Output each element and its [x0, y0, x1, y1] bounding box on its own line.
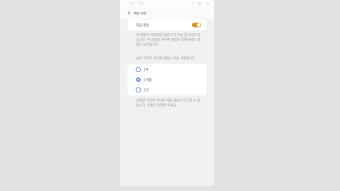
button[interactable]: 계정 삭제 — [127, 8, 146, 18]
staticText: 계정 삭제 — [133, 10, 146, 16]
button[interactable]: 대화 백업 — [120, 19, 214, 30]
button[interactable]: 1년 — [127, 85, 206, 95]
button[interactable]: 닫기 — [204, 0, 212, 7]
button[interactable]: 1개월 — [127, 75, 206, 85]
staticText: 대화 백업 — [136, 23, 149, 27]
button[interactable]: 최소화 — [188, 0, 196, 7]
button[interactable]: 1주 — [127, 64, 206, 75]
staticText: 1개월 — [143, 77, 151, 82]
staticText: 1년 — [143, 87, 148, 92]
staticText: 내 계정이 삭제되면 대화가 더 이상 표시되지 않습니다. 이 설정을 켜두면… — [136, 32, 200, 47]
staticText: 설정 - 계정 — [129, 1, 144, 6]
staticText: 보관 기간이 지나면 대화는 자동 삭제됩니다 — [136, 56, 195, 60]
staticText: 1주 — [143, 67, 148, 72]
button[interactable]: 최대화 — [196, 0, 204, 7]
staticText: 선택한 기간이 지나면 대화 내용은 복구할 수 없습니다. 신중히 선택해 주… — [136, 98, 200, 107]
